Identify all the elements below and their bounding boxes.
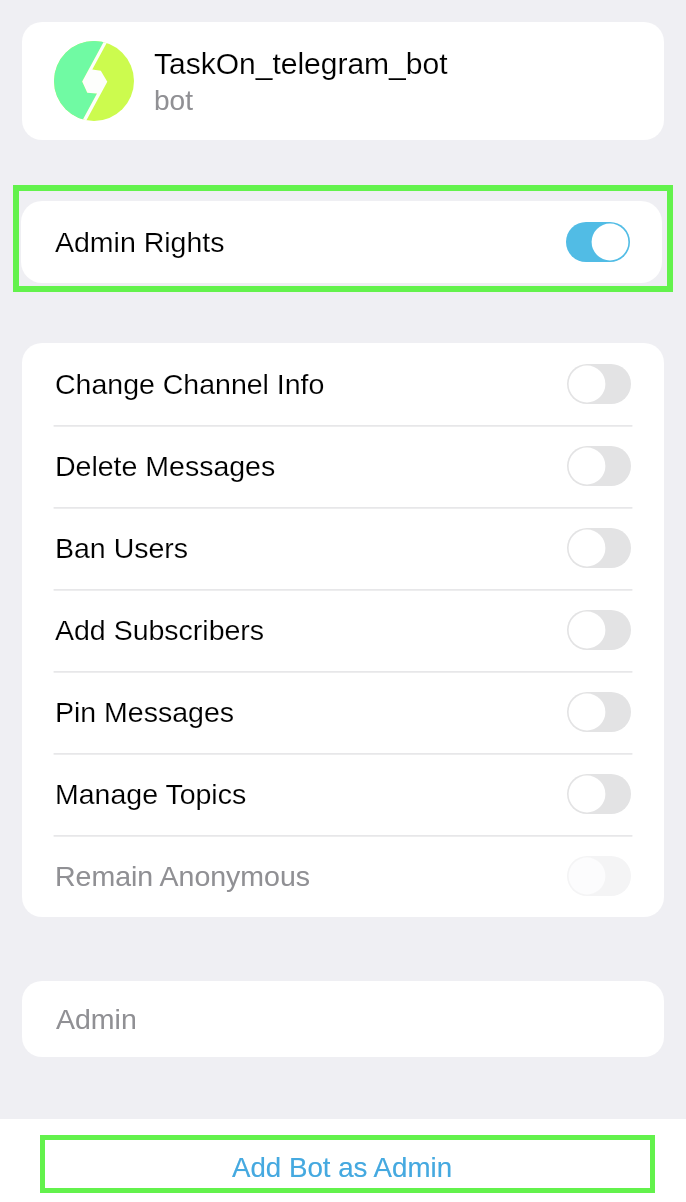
button[interactable]: Admin Rights — [21, 201, 662, 283]
button[interactable]: Add Bot as Admin — [40, 1135, 655, 1193]
staticText: Add Bot as Admin — [232, 1152, 453, 1183]
staticText: TaskOn_telegram_bot — [154, 47, 448, 81]
button[interactable]: Add Subscribers — [22, 589, 664, 671]
button[interactable]: Pin Messages — [22, 671, 664, 753]
button[interactable]: Manage Topics toggle — [567, 774, 631, 814]
button[interactable]: Ban Users toggle — [567, 528, 631, 568]
button[interactable]: Manage Topics — [22, 753, 664, 835]
staticText: Remain Anonymous — [55, 860, 311, 892]
button[interactable]: Remain Anonymous — [22, 835, 664, 917]
staticText: Change Channel Info — [55, 368, 325, 400]
staticText: Add Subscribers — [55, 614, 265, 646]
button[interactable]: Bot avatar — [22, 22, 664, 140]
button[interactable]: Delete Messages toggle — [567, 446, 631, 486]
button[interactable]: Remain Anonymous toggle — [567, 856, 631, 896]
staticText: Pin Messages — [55, 696, 235, 728]
button[interactable]: Add Subscribers toggle — [567, 610, 631, 650]
button[interactable]: Ban Users — [22, 507, 664, 589]
button[interactable]: Delete Messages — [22, 425, 664, 507]
button[interactable]: Change Channel Info toggle — [567, 364, 631, 404]
staticText: Manage Topics — [55, 778, 247, 810]
button[interactable]: Change Channel Info — [22, 343, 664, 425]
staticText: Admin — [56, 1003, 137, 1035]
staticText: Ban Users — [55, 532, 189, 564]
staticText: bot — [154, 85, 193, 116]
staticText: Delete Messages — [55, 450, 276, 482]
button[interactable]: Pin Messages toggle — [567, 692, 631, 732]
button[interactable]: Admin — [22, 981, 664, 1057]
button[interactable]: Admin Rights toggle — [566, 222, 630, 262]
staticText: Admin Rights — [55, 226, 225, 258]
other: Bot avatar — [54, 41, 134, 121]
